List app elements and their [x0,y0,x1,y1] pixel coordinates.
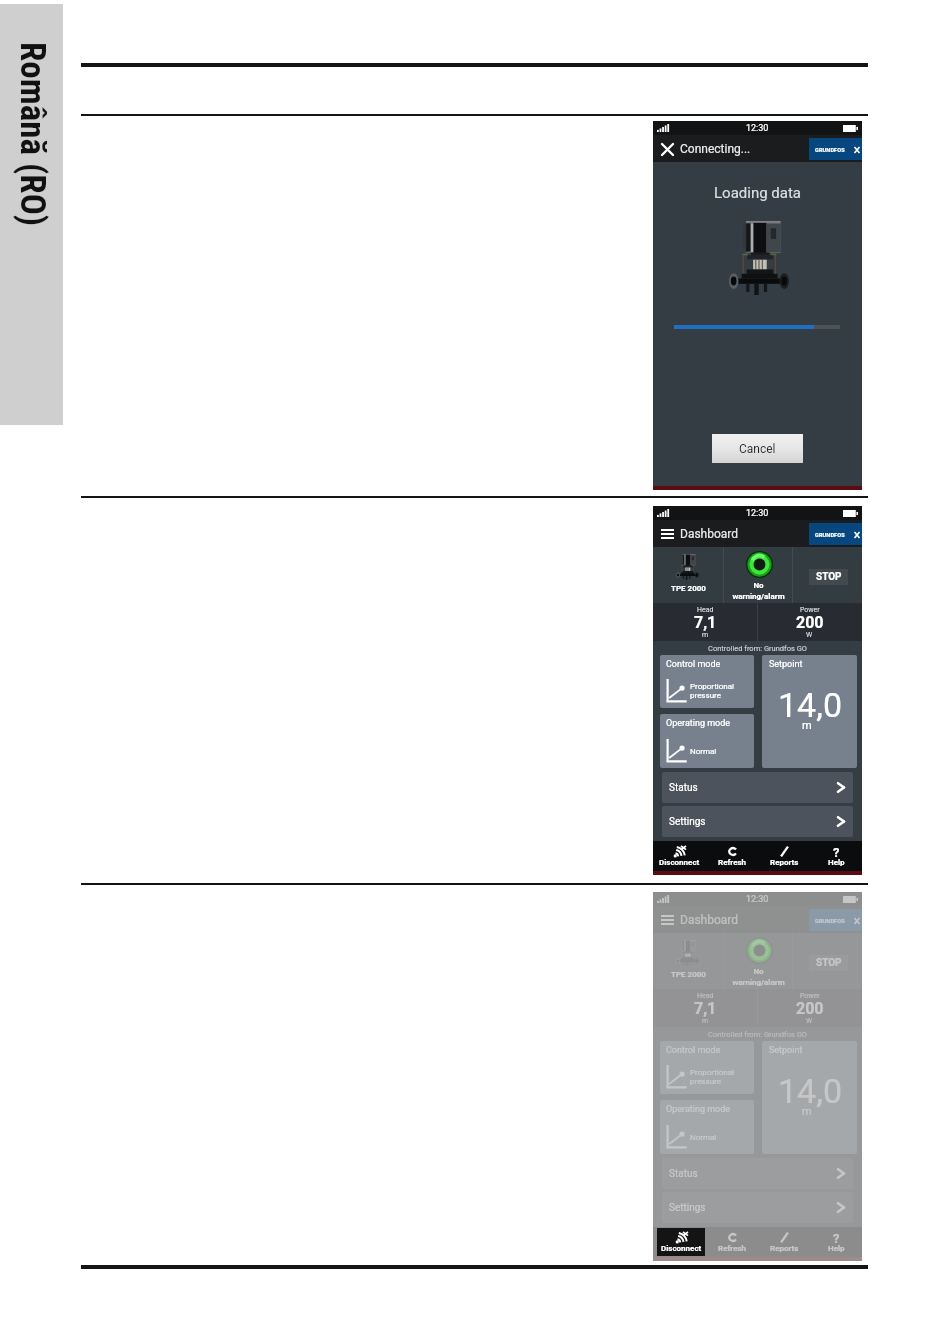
staticText: Refresh [718,1244,747,1253]
staticText: ? [833,1231,840,1243]
button[interactable]: Refresh [706,1227,758,1257]
button[interactable]: ? [810,1227,862,1257]
button[interactable]: Head [653,603,757,641]
staticText: Power [800,606,820,614]
staticText: Cancel [739,442,776,456]
button[interactable]: Operating mode [660,1100,754,1154]
staticText: GRUNDFOS [815,147,845,153]
staticText: No warning/alarm [732,581,785,601]
button[interactable]: No warning/alarm [724,933,792,989]
staticText: 7,1 [694,999,717,1018]
button[interactable]: Disconnect [657,1228,705,1256]
button[interactable]: Disconnect [653,841,706,871]
staticText: Proportional pressure [690,1068,735,1086]
staticText: Normal [690,1133,717,1142]
staticText: Control mode [666,659,721,670]
button[interactable]: Settings [662,806,853,837]
button[interactable]: Head [653,989,757,1027]
button[interactable]: Control mode [660,1041,754,1094]
staticText: Normal [690,747,717,756]
staticText: Head [697,992,714,1000]
staticText: m [702,1017,709,1025]
button[interactable]: Operating mode [660,714,754,768]
staticText: Power [800,992,820,1000]
button[interactable]: Setpoint [762,1041,857,1154]
staticText: Setpoint [769,1045,803,1056]
button[interactable]: Refresh [706,841,758,871]
button[interactable]: Power [757,603,862,641]
staticText: Connecting... [680,142,751,156]
button[interactable]: Power [757,989,862,1027]
staticText: Help [828,1244,845,1253]
button[interactable]: Reports [758,841,810,871]
staticText: Head [697,606,714,614]
button[interactable]: Status [662,1158,853,1189]
staticText: Operating mode [666,718,731,729]
staticText: Refresh [718,858,747,867]
staticText: TPE 2000 [671,970,706,979]
staticText: Setpoint [769,659,803,670]
button[interactable]: STOP [809,569,848,585]
staticText: GRUNDFOS [815,532,845,538]
staticText: Controlled from: Grundfos GO [708,644,807,653]
button[interactable]: Close [657,139,677,159]
button[interactable]: Control mode [660,655,754,708]
staticText: Controlled from: Grundfos GO [708,1030,807,1039]
staticText: Settings [669,1202,706,1214]
button[interactable]: Disconnect [653,1227,706,1257]
staticText: Status [669,1168,698,1180]
staticText: Dashboard [680,527,739,541]
staticText: Help [828,858,845,867]
staticText: 200 [796,999,824,1018]
button[interactable]: STOP [809,955,848,971]
staticText: W [806,631,813,639]
button[interactable]: TPE 2000 [653,933,723,989]
staticText: m [802,1105,812,1118]
staticText: 12:30 [746,123,769,134]
staticText: STOP [816,957,842,969]
staticText: GRUNDFOS [815,918,845,924]
staticText: Status [669,782,698,794]
staticText: 7,1 [694,613,717,632]
button[interactable]: Cancel [712,434,803,463]
staticText: Settings [669,816,706,828]
staticText: 14,0 [778,1071,843,1111]
staticText: STOP [816,571,842,583]
button[interactable]: ? [810,841,862,871]
staticText: Disconnect [659,858,700,867]
staticText: 14,0 [778,685,843,725]
button[interactable]: Menu [656,909,678,931]
staticText: m [702,631,709,639]
staticText: Reports [770,1244,799,1253]
staticText: Reports [770,858,799,867]
button[interactable]: Reports [758,1227,810,1257]
staticText: ? [833,845,840,857]
button[interactable]: Status [662,772,853,803]
staticText: Proportional pressure [690,682,735,700]
button[interactable]: Setpoint [762,655,857,768]
staticText: 200 [796,613,824,632]
staticText: Română (RO) [12,42,53,227]
button[interactable]: Settings [662,1192,853,1223]
staticText: 12:30 [746,508,769,519]
staticText: No warning/alarm [732,967,785,987]
staticText: Loading data [653,184,862,202]
button[interactable]: Menu [656,523,678,545]
button[interactable]: No warning/alarm [724,547,792,603]
staticText: Operating mode [666,1104,731,1115]
staticText: Disconnect [661,1244,702,1253]
staticText: m [802,719,812,732]
staticText: Dashboard [680,913,739,927]
staticText: 12:30 [746,894,769,905]
staticText: Disconnect [659,1244,700,1253]
staticText: TPE 2000 [671,584,706,593]
staticText: Control mode [666,1045,721,1056]
button[interactable]: TPE 2000 [653,547,723,603]
staticText: W [806,1017,813,1025]
